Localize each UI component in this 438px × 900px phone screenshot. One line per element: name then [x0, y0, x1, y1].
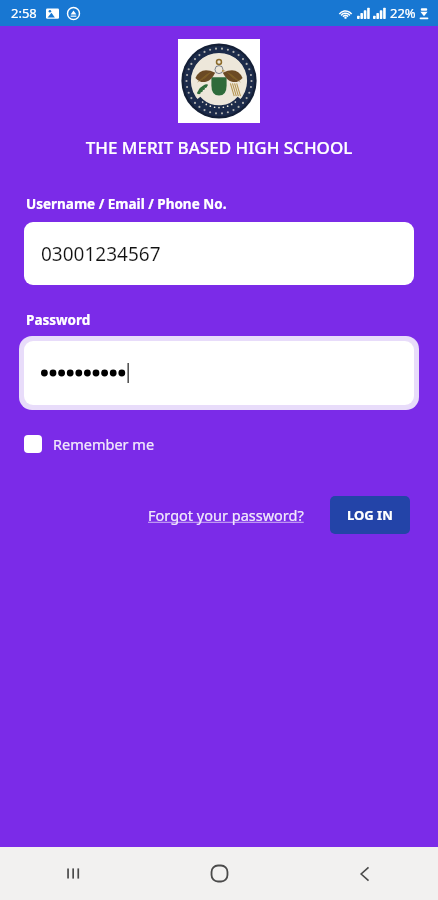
staticText: 22% [390, 4, 416, 22]
button[interactable]: Remember me [24, 431, 163, 457]
staticText: Password [26, 311, 91, 329]
staticText: Forgot your password? [148, 505, 304, 525]
button[interactable]: 03001234567 [24, 222, 414, 285]
staticText: LOG IN [347, 506, 393, 524]
button[interactable]: Back [292, 847, 438, 900]
button[interactable]: Home [146, 847, 292, 900]
staticText: 03001234567 [41, 241, 161, 267]
button[interactable]: Recent apps [0, 847, 146, 900]
button[interactable]: LOG IN [330, 496, 410, 534]
button[interactable] [24, 341, 414, 405]
staticText: THE MERIT BASED HIGH SCHOOL [0, 136, 438, 159]
staticText: Username / Email / Phone No. [26, 195, 227, 213]
button[interactable]: Forgot your password? [146, 499, 306, 531]
staticText: 2:58 [11, 4, 37, 22]
staticText: Remember me [53, 434, 155, 454]
